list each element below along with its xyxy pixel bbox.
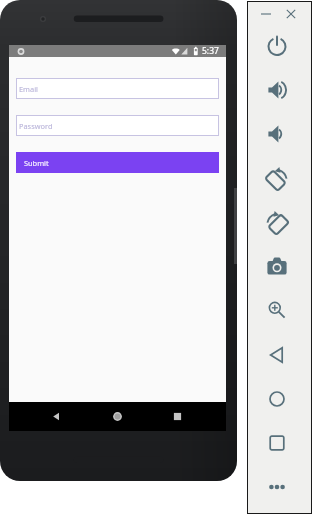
- button[interactable]: Close: [282, 5, 300, 23]
- staticText: Submit: [24, 158, 49, 168]
- staticText: Password: [19, 121, 53, 131]
- staticText: 5:37: [202, 45, 219, 57]
- button[interactable]: Power: [263, 32, 291, 60]
- button[interactable]: Home: [263, 385, 291, 413]
- button[interactable]: Back: [35, 402, 79, 431]
- button[interactable]: Screenshot: [263, 252, 291, 280]
- button[interactable]: Back: [263, 341, 291, 369]
- button[interactable]: Rotate right: [263, 165, 291, 193]
- button[interactable]: Rotate left: [263, 209, 291, 237]
- button[interactable]: Overview: [263, 429, 291, 457]
- button[interactable]: Home: [95, 402, 139, 431]
- button[interactable]: Minimize: [257, 5, 275, 23]
- button[interactable]: Recents: [155, 402, 199, 431]
- button[interactable]: Zoom: [263, 296, 291, 324]
- button[interactable]: Submit: [16, 152, 219, 173]
- button[interactable]: Password: [16, 115, 219, 136]
- button[interactable]: Email: [16, 78, 219, 99]
- button[interactable]: More: [263, 473, 291, 501]
- staticText: Email: [19, 84, 38, 94]
- button[interactable]: Volume down: [263, 120, 291, 148]
- button[interactable]: Volume up: [263, 76, 291, 104]
